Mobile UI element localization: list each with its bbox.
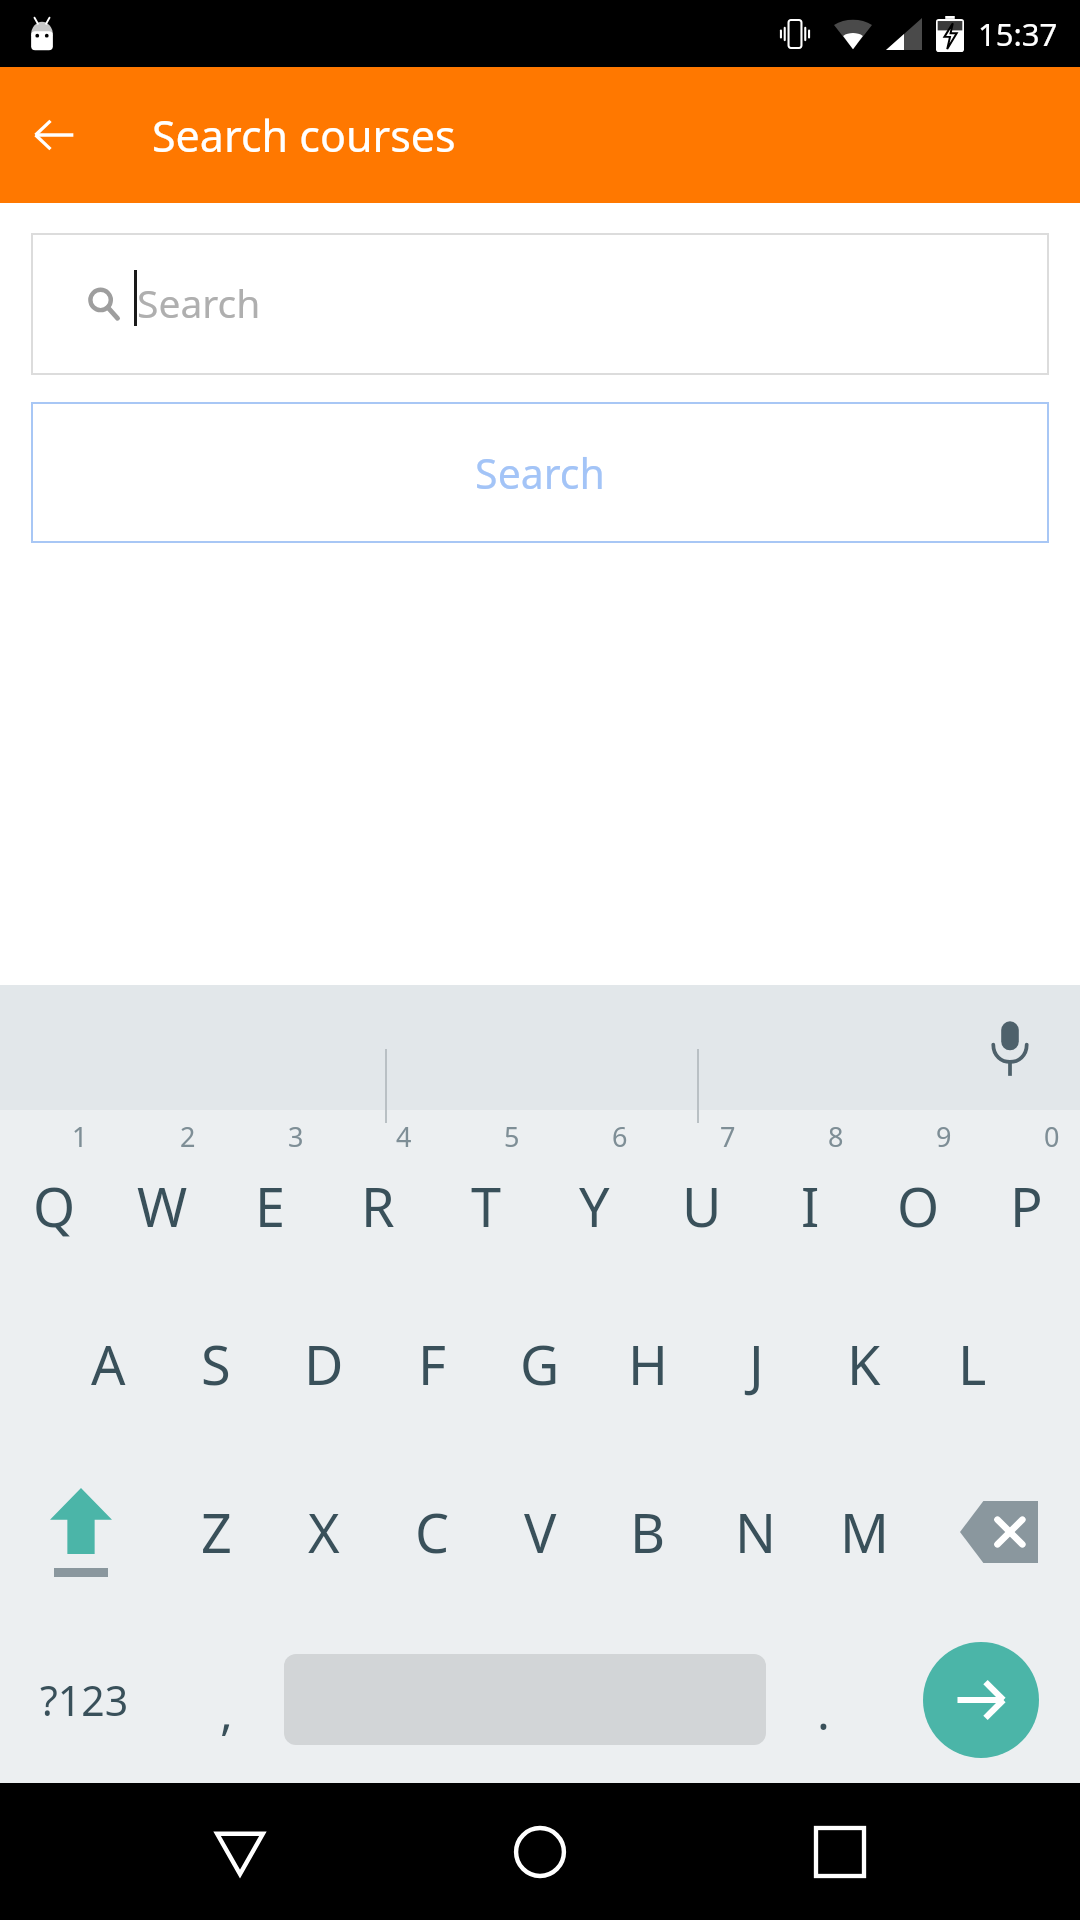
button[interactable]: Voice input xyxy=(970,1008,1050,1088)
staticText: S xyxy=(201,1327,231,1401)
staticText: G xyxy=(520,1327,560,1401)
staticText: 4 xyxy=(396,1118,412,1155)
staticText: ?123 xyxy=(40,1672,129,1728)
button[interactable]: , xyxy=(169,1616,284,1783)
staticText: O xyxy=(897,1169,940,1243)
button[interactable]: Shift xyxy=(0,1448,162,1616)
staticText: V xyxy=(524,1495,557,1569)
staticText: . xyxy=(817,1679,830,1744)
button[interactable]: Back xyxy=(180,1792,300,1912)
button[interactable]: Search xyxy=(31,233,1049,375)
button[interactable]: X xyxy=(270,1448,378,1616)
button[interactable]: N xyxy=(702,1448,810,1616)
staticText: U xyxy=(682,1169,722,1243)
button[interactable]: . xyxy=(766,1616,881,1783)
staticText: I xyxy=(801,1169,820,1243)
staticText: P xyxy=(1010,1169,1043,1243)
button[interactable]: F xyxy=(378,1280,486,1448)
staticText: R xyxy=(361,1169,395,1243)
button[interactable]: G xyxy=(486,1280,594,1448)
button[interactable]: 7 xyxy=(648,1112,756,1280)
button[interactable]: H xyxy=(594,1280,702,1448)
button[interactable]: 2 xyxy=(108,1112,216,1280)
staticText: 15:37 xyxy=(978,13,1058,55)
staticText: Q xyxy=(33,1169,76,1243)
button[interactable]: K xyxy=(810,1280,918,1448)
button[interactable]: M xyxy=(810,1448,918,1616)
staticText: F xyxy=(418,1327,447,1401)
button[interactable]: Back xyxy=(6,87,102,183)
staticText: T xyxy=(471,1169,502,1243)
staticText: 8 xyxy=(828,1118,844,1155)
button[interactable]: B xyxy=(594,1448,702,1616)
button[interactable]: 0 xyxy=(972,1112,1080,1280)
staticText: Y xyxy=(579,1169,610,1243)
button[interactable]: V xyxy=(486,1448,594,1616)
button[interactable]: D xyxy=(270,1280,378,1448)
staticText: Z xyxy=(201,1495,232,1569)
button[interactable]: L xyxy=(918,1280,1026,1448)
staticText: A xyxy=(91,1327,126,1401)
staticText: 6 xyxy=(612,1118,628,1155)
button[interactable]: 9 xyxy=(864,1112,972,1280)
staticText: , xyxy=(220,1679,233,1744)
button[interactable]: 3 xyxy=(216,1112,324,1280)
staticText: H xyxy=(628,1327,669,1401)
button[interactable]: A xyxy=(54,1280,162,1448)
staticText: B xyxy=(630,1495,666,1569)
staticText: C xyxy=(415,1495,450,1569)
button[interactable]: Backspace xyxy=(918,1448,1080,1616)
button[interactable]: J xyxy=(702,1280,810,1448)
button[interactable]: Home xyxy=(480,1792,600,1912)
staticText: 1 xyxy=(72,1118,88,1155)
button[interactable]: 4 xyxy=(324,1112,432,1280)
staticText: J xyxy=(749,1327,764,1401)
staticText: M xyxy=(840,1495,889,1569)
staticText: Search xyxy=(475,445,605,501)
button[interactable]: C xyxy=(378,1448,486,1616)
staticText: 7 xyxy=(720,1118,736,1155)
button[interactable]: 8 xyxy=(756,1112,864,1280)
button[interactable]: 6 xyxy=(540,1112,648,1280)
staticText: Search courses xyxy=(152,106,456,165)
staticText: D xyxy=(304,1327,344,1401)
staticText: 9 xyxy=(936,1118,952,1155)
staticText: K xyxy=(847,1327,881,1401)
button[interactable]: Z xyxy=(162,1448,270,1616)
staticText: L xyxy=(958,1327,987,1401)
button[interactable]: Search xyxy=(31,402,1049,543)
staticText: X xyxy=(308,1495,340,1569)
staticText: Search xyxy=(137,276,261,329)
button[interactable]: 5 xyxy=(432,1112,540,1280)
button[interactable]: ?123 xyxy=(0,1616,169,1783)
button[interactable]: Enter xyxy=(881,1616,1080,1783)
staticText: 5 xyxy=(504,1118,520,1155)
staticText: W xyxy=(137,1169,188,1243)
staticText: E xyxy=(255,1169,286,1243)
button[interactable]: 1 xyxy=(0,1112,108,1280)
staticText: 0 xyxy=(1044,1118,1060,1155)
staticText: 3 xyxy=(288,1118,304,1155)
button[interactable]: S xyxy=(162,1280,270,1448)
staticText: N xyxy=(735,1495,777,1569)
staticText: 2 xyxy=(180,1118,196,1155)
button[interactable]: Recent apps xyxy=(780,1792,900,1912)
